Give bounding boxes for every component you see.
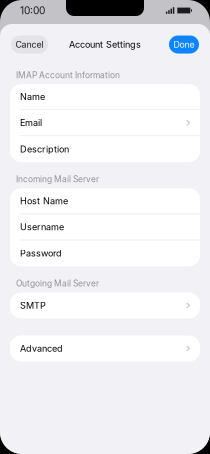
- button[interactable]: Email: [10, 110, 200, 136]
- button[interactable]: Description: [10, 136, 200, 162]
- button[interactable]: Done: [169, 35, 199, 53]
- staticText: 10:00: [20, 4, 45, 17]
- staticText: Username: [20, 221, 64, 232]
- staticText: Account Settings: [69, 39, 141, 50]
- button[interactable]: Advanced: [10, 335, 200, 361]
- staticText: Password: [20, 248, 62, 259]
- staticText: SMTP: [20, 300, 46, 311]
- staticText: Outgoing Mail Server: [16, 278, 99, 288]
- staticText: Host Name: [20, 195, 68, 206]
- button[interactable]: Username: [10, 214, 200, 240]
- staticText: Done: [173, 39, 194, 50]
- staticText: Name: [20, 91, 45, 102]
- staticText: IMAP Account Information: [16, 70, 120, 80]
- staticText: Incoming Mail Server: [16, 174, 99, 184]
- button[interactable]: Host Name: [10, 188, 200, 214]
- staticText: Cancel: [15, 39, 43, 50]
- button[interactable]: Password: [10, 240, 200, 266]
- staticText: Advanced: [20, 343, 63, 354]
- staticText: Email: [20, 117, 42, 128]
- button[interactable]: SMTP: [10, 292, 200, 318]
- staticText: Description: [20, 144, 69, 155]
- button[interactable]: Cancel: [11, 35, 48, 53]
- button[interactable]: Name: [10, 84, 200, 110]
